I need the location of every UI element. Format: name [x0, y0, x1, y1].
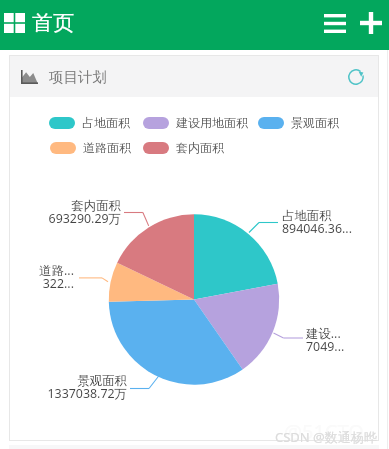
staticText: 道路面积: [83, 140, 131, 155]
button[interactable]: 套内面积: [143, 140, 224, 155]
staticText: @51CTO: [284, 418, 364, 445]
staticText: 道路... 322...: [39, 262, 74, 292]
button[interactable]: Add: [355, 7, 387, 39]
staticText: 套内面积 693290.29万: [48, 198, 121, 227]
button[interactable]: Menu: [319, 7, 351, 39]
button[interactable]: 景观面积: [258, 115, 339, 130]
button[interactable]: 道路面积: [50, 140, 131, 155]
staticText: 景观面积: [291, 115, 339, 130]
button[interactable]: 占地面积: [49, 115, 130, 130]
staticText: 建设用地面积: [176, 115, 248, 130]
staticText: 项目计划: [49, 68, 107, 86]
staticText: 占地面积: [82, 115, 130, 130]
button[interactable]: Apps: [1, 10, 27, 36]
button[interactable]: 建设用地面积: [143, 115, 248, 130]
staticText: 建设... 7049...: [306, 325, 345, 355]
staticText: 占地面积 894046.36...: [282, 208, 352, 237]
button[interactable]: Refresh: [344, 65, 368, 89]
staticText: CSDN @数通杨晔: [275, 428, 377, 446]
staticText: 套内面积: [176, 140, 224, 155]
staticText: 景观面积 1337038.72万: [47, 373, 127, 402]
staticText: 首页: [32, 10, 74, 36]
